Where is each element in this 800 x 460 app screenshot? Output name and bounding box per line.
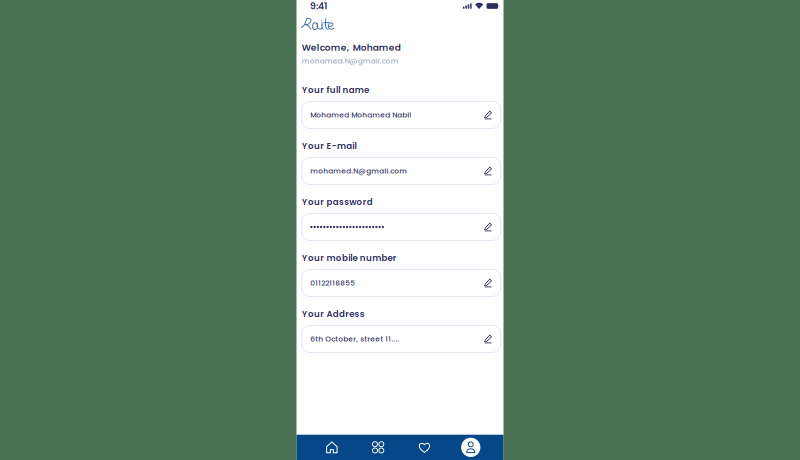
button[interactable]: 01122118855 bbox=[302, 269, 501, 296]
button[interactable]: Profile bbox=[448, 435, 494, 460]
staticText: Welcome, Mohamed bbox=[302, 41, 401, 54]
button[interactable]: Home bbox=[309, 435, 355, 460]
button[interactable]: Mohamed Mohamed Nabil bbox=[302, 101, 501, 128]
button[interactable]: Favorites bbox=[401, 435, 448, 460]
staticText: Your mobile number bbox=[302, 252, 397, 264]
staticText: Your full name bbox=[302, 84, 369, 96]
button[interactable] bbox=[302, 213, 501, 240]
staticText: 9:41 bbox=[310, 0, 327, 13]
button[interactable]: mohamed.N@gmail.com bbox=[302, 157, 501, 184]
button[interactable]: Categories bbox=[355, 435, 401, 460]
button[interactable]: 6th October, street 11.... bbox=[302, 325, 501, 352]
staticText: mohamed.N@gmail.com bbox=[310, 166, 407, 176]
staticText: Mohamed Mohamed Nabil bbox=[310, 110, 411, 120]
staticText: Your E-mail bbox=[302, 140, 356, 152]
staticText: 6th October, street 11.... bbox=[310, 334, 399, 344]
staticText: mohamed.N@gmail.com bbox=[302, 56, 399, 66]
staticText: Your password bbox=[302, 196, 373, 208]
staticText: 01122118855 bbox=[310, 278, 355, 288]
staticText: Your Address bbox=[302, 308, 365, 320]
